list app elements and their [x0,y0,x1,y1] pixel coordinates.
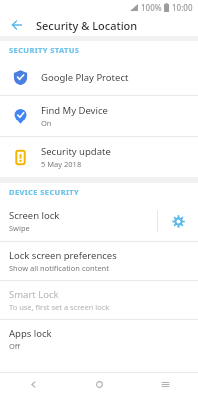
staticText: Apps lock [9,327,52,340]
button[interactable]: Back [0,373,66,396]
staticText: 5 May 2018 [41,159,82,169]
button[interactable]: Lock screen preferences [0,242,198,280]
button[interactable]: Find My Device [0,96,198,136]
button[interactable]: Apps lock [0,320,198,358]
staticText: Google Play Protect [41,71,129,84]
staticText: Lock screen preferences [9,249,117,262]
staticText: Off [9,341,21,351]
staticText: Swipe [9,223,30,233]
staticText: Security update [41,145,111,158]
button[interactable]: Back [6,14,28,36]
button[interactable]: Home [66,373,132,396]
staticText: Security & Location [36,18,138,33]
button[interactable]: Smart Lock [0,281,198,319]
staticText: Find My Device [41,104,108,117]
button[interactable]: Security update [0,137,198,177]
button[interactable]: Screen lock [0,201,157,241]
staticText: Show all notification content [9,263,109,273]
button[interactable]: Recent apps [132,373,198,396]
staticText: To use, first set a screen lock [9,302,110,312]
staticText: 10:00 [172,2,193,13]
staticText: SECURITY STATUS [9,45,80,55]
button[interactable]: Screen lock settings [158,201,198,241]
staticText: Screen lock [9,209,60,222]
button[interactable]: Google Play Protect [0,59,198,95]
staticText: Smart Lock [9,288,59,301]
staticText: DEVICE SECURITY [9,187,80,197]
staticText: 100% [141,2,162,13]
staticText: On [41,118,52,128]
